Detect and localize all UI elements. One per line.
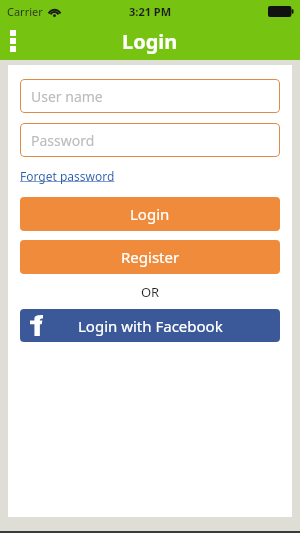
staticText: Carrier: [7, 4, 43, 19]
staticText: Login: [122, 28, 178, 55]
staticText: Forget password: [20, 168, 115, 184]
staticText: OR: [20, 283, 280, 301]
staticText: Login with Facebook: [78, 316, 223, 336]
button[interactable]: Register: [20, 240, 280, 274]
staticText: 3:21 PM: [129, 4, 172, 19]
button[interactable]: Login with Facebook: [20, 309, 280, 342]
staticText: Register: [121, 247, 180, 267]
staticText: Login: [130, 204, 170, 224]
button[interactable]: Password: [20, 123, 280, 157]
button[interactable]: Forget password: [20, 167, 115, 185]
button[interactable]: Login: [20, 197, 280, 231]
button[interactable]: User name: [20, 79, 280, 113]
staticText: User name: [31, 87, 103, 106]
button[interactable]: More options: [0, 22, 26, 60]
staticText: Password: [31, 131, 95, 150]
